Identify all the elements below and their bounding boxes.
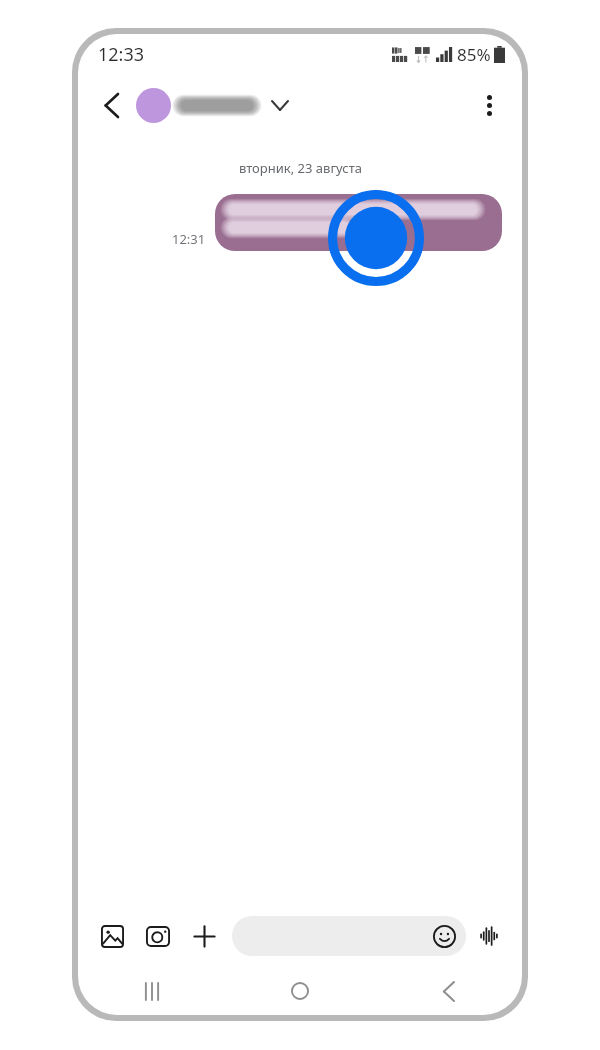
button[interactable]: Back <box>89 83 133 127</box>
staticText: 12:33 <box>98 42 145 67</box>
button[interactable]: Back <box>374 967 522 1015</box>
button[interactable]: Voice message <box>470 917 508 955</box>
button[interactable]: Gallery <box>92 916 132 956</box>
button[interactable]: Home <box>226 967 374 1015</box>
staticText: 85% <box>457 43 491 66</box>
button[interactable]: Camera <box>138 916 178 956</box>
button[interactable]: Message input <box>232 916 466 956</box>
button[interactable]: Recent apps <box>78 967 226 1015</box>
button[interactable]: Add attachment <box>184 916 224 956</box>
button[interactable]: More options <box>467 83 511 127</box>
staticText: вторник, 23 августа <box>239 159 362 177</box>
button[interactable] <box>215 194 502 251</box>
staticText: 12:31 <box>172 230 206 248</box>
button[interactable] <box>134 80 290 130</box>
